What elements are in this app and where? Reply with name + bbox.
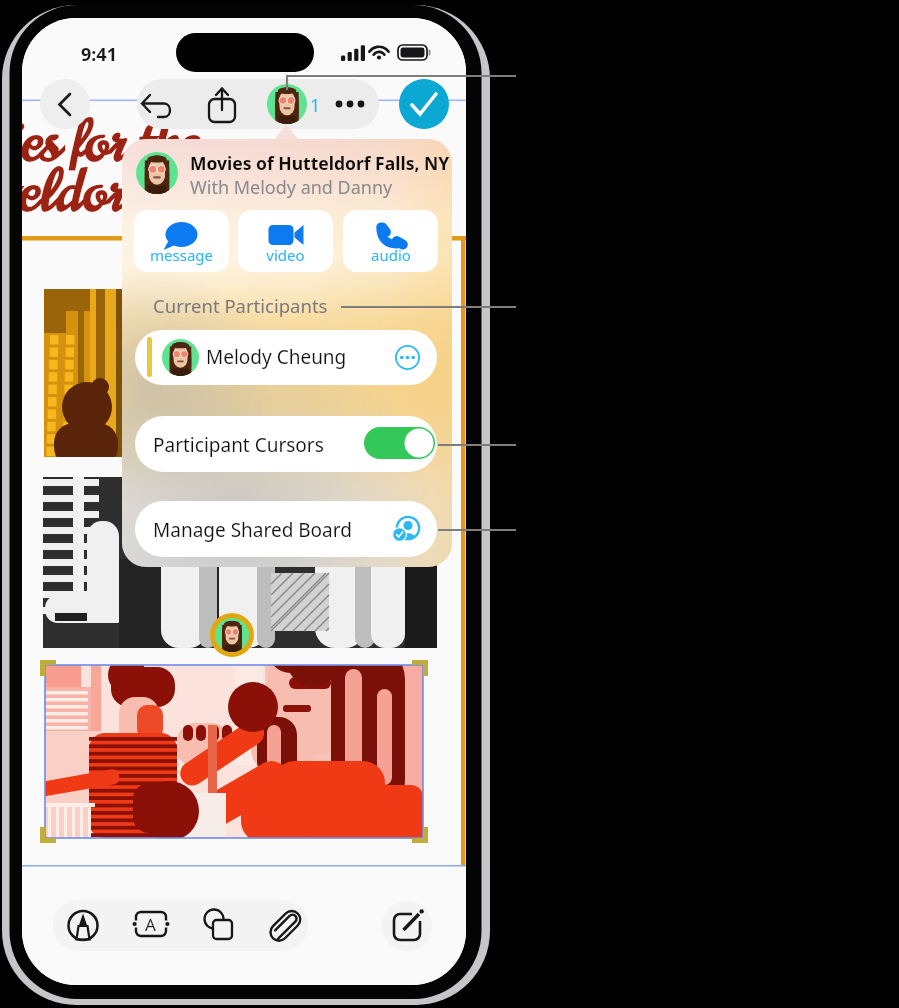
- button[interactable]: video: [238, 210, 333, 272]
- button[interactable]: Draw: [55, 900, 111, 951]
- button[interactable]: Done: [399, 79, 449, 129]
- staticText: Manage Shared Board: [153, 517, 352, 543]
- button[interactable]: Participant Cursors: [135, 416, 437, 472]
- staticText: With Melody and Danny: [190, 175, 393, 200]
- button[interactable]: message: [134, 210, 229, 272]
- button[interactable]: Participants: [264, 79, 322, 129]
- staticText: Participant Cursors: [153, 432, 324, 458]
- staticText: audio: [371, 245, 411, 265]
- staticText: video: [266, 245, 305, 265]
- button[interactable]: Participant Cursors toggle: [364, 427, 435, 459]
- button[interactable]: Manage Shared Board: [135, 501, 437, 557]
- staticText: vies for the Hutteldorf: [22, 101, 430, 183]
- button[interactable]: New note: [382, 901, 432, 951]
- staticText: message: [150, 245, 213, 265]
- staticText: Current Participants: [153, 293, 328, 318]
- button[interactable]: Back: [40, 79, 90, 129]
- staticText: tteldorf Falls, NY: [22, 151, 374, 233]
- staticText: 1: [310, 93, 321, 118]
- button[interactable]: Melody Cheung: [135, 330, 437, 385]
- button[interactable]: Attach: [257, 900, 308, 951]
- button[interactable]: Share: [194, 79, 250, 129]
- button[interactable]: Undo: [137, 79, 193, 129]
- staticText: Movies of Hutteldorf Falls, NY: [190, 151, 450, 175]
- staticText: 9:41: [81, 42, 117, 67]
- staticText: A: [145, 913, 156, 936]
- button[interactable]: Shapes: [191, 900, 247, 951]
- button[interactable]: audio: [343, 210, 438, 272]
- button[interactable]: Text: [123, 900, 179, 951]
- button[interactable]: More options: [329, 79, 379, 129]
- staticText: Melody Cheung: [206, 344, 347, 370]
